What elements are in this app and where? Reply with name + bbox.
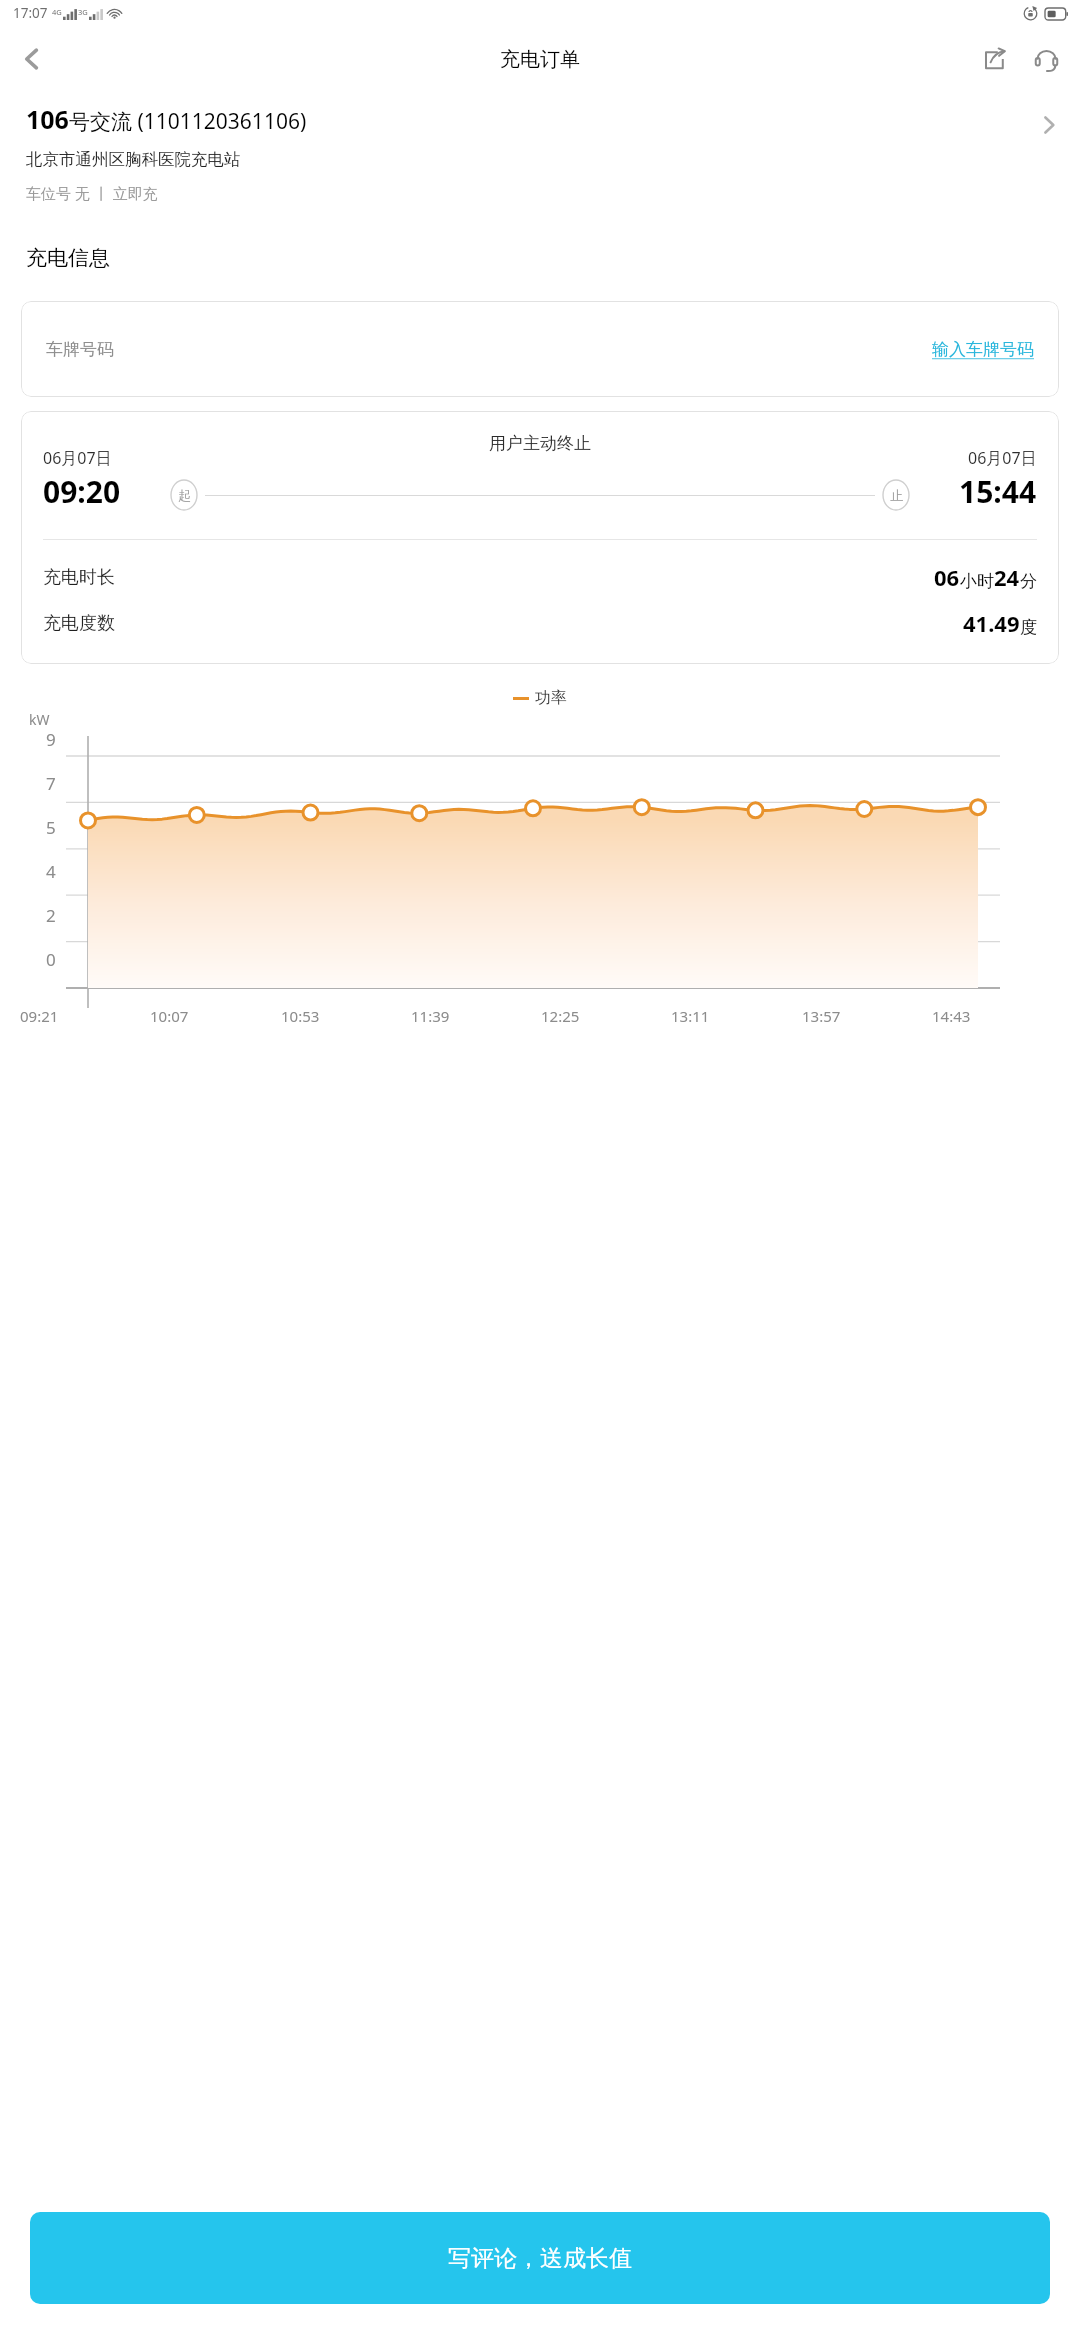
button[interactable]: 106 <box>0 92 1080 207</box>
staticText: 功率 <box>535 688 567 708</box>
staticText: 13:57 <box>802 1006 866 1026</box>
staticText: 7 <box>46 772 56 795</box>
staticText: 用户主动终止 <box>489 433 591 454</box>
staticText: 24 <box>994 562 1020 592</box>
staticText: 9 <box>46 728 56 751</box>
staticText: 09:21 <box>20 1006 84 1026</box>
staticText: 41.49 <box>963 608 1020 638</box>
button[interactable]: 车牌号码 <box>21 301 1059 397</box>
staticText: 06 <box>934 562 960 592</box>
staticText: 4 <box>46 860 56 883</box>
staticText: 0 <box>46 948 56 971</box>
staticText: 4G <box>52 7 62 17</box>
staticText: 号交流 (1101120361106) <box>69 107 307 136</box>
staticText: 起 <box>178 487 191 503</box>
staticText: 06月07日 <box>968 447 1037 469</box>
staticText: 北京市通州区胸科医院充电站 <box>26 149 241 170</box>
staticText: 09:20 <box>43 471 121 512</box>
button[interactable]: 分享 <box>970 35 1018 83</box>
staticText: 11:39 <box>411 1006 475 1026</box>
staticText: 输入车牌号码 <box>932 339 1034 360</box>
staticText: 5 <box>46 816 56 839</box>
staticText: 17:07 <box>13 4 48 22</box>
staticText: 3G <box>78 7 88 17</box>
staticText: 小时 <box>960 571 994 592</box>
staticText: 15:44 <box>959 471 1037 512</box>
staticText: 止 <box>890 487 903 503</box>
staticText: kW <box>29 710 50 729</box>
staticText: 2 <box>46 904 56 927</box>
staticText: 106 <box>26 102 69 136</box>
staticText: 充电信息 <box>26 245 110 271</box>
button[interactable]: 写评论，送成长值 <box>30 2212 1050 2304</box>
staticText: 10:53 <box>281 1006 345 1026</box>
button[interactable]: 客服 <box>1022 35 1070 83</box>
staticText: 充电时长 <box>43 566 115 589</box>
staticText: 分 <box>1020 571 1037 592</box>
button[interactable]: 返回 <box>6 33 58 85</box>
staticText: 车位号 无 丨 立即充 <box>26 183 158 203</box>
staticText: 06月07日 <box>43 447 112 469</box>
staticText: 12:25 <box>541 1006 605 1026</box>
staticText: 度 <box>1020 617 1037 638</box>
staticText: 充电订单 <box>500 47 580 72</box>
staticText: 14:43 <box>932 1006 996 1026</box>
staticText: 车牌号码 <box>46 339 114 360</box>
staticText: 写评论，送成长值 <box>448 2244 632 2273</box>
staticText: 13:11 <box>671 1006 735 1026</box>
staticText: 10:07 <box>150 1006 214 1026</box>
staticText: 充电度数 <box>43 612 115 635</box>
